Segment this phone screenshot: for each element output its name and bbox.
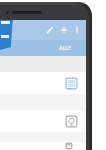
staticText: ALLE [59, 45, 71, 52]
button[interactable]: Weitere Optionen [71, 24, 83, 36]
button[interactable]: Hinzufügen [57, 23, 71, 37]
button[interactable] [0, 110, 86, 132]
button[interactable]: Navigationsleiste [0, 20, 86, 150]
button[interactable]: Bearbeiten [43, 23, 57, 37]
button[interactable] [0, 142, 86, 150]
button[interactable]: ZULETZT [0, 40, 43, 56]
button[interactable]: ALLE [43, 40, 86, 56]
button[interactable] [0, 72, 86, 94]
